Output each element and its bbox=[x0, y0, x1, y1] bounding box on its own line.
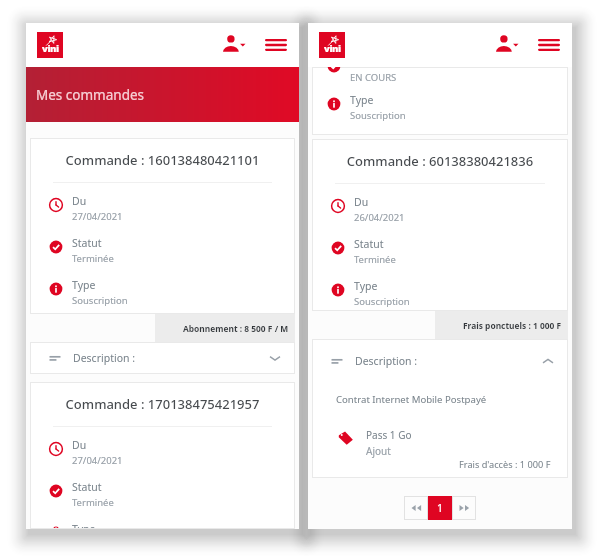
staticText: Contrat Internet Mobile Postpayé bbox=[336, 393, 487, 406]
button[interactable]: Account bbox=[496, 31, 520, 59]
staticText: Du bbox=[72, 194, 87, 208]
staticText: vini bbox=[324, 42, 341, 55]
staticText: Description : bbox=[73, 351, 136, 365]
staticText: Souscription bbox=[72, 294, 128, 307]
staticText: Souscription bbox=[350, 109, 406, 122]
button[interactable]: Previous page bbox=[404, 496, 428, 520]
staticText: Abonnement : 8 500 F / M bbox=[183, 323, 289, 334]
button[interactable]: vini home bbox=[37, 32, 63, 58]
staticText: Statut bbox=[354, 237, 384, 251]
staticText: EN COURS bbox=[350, 71, 397, 84]
button[interactable]: Description : bbox=[30, 342, 295, 374]
button[interactable]: Description : bbox=[312, 339, 568, 383]
staticText: Pass 1 Go bbox=[366, 428, 412, 442]
staticText: 1 bbox=[437, 501, 444, 515]
staticText: Terminée bbox=[354, 253, 396, 266]
staticText: Type bbox=[354, 279, 378, 293]
staticText: Description : bbox=[355, 354, 418, 368]
staticText: Commande : 60138380421836 bbox=[312, 152, 568, 170]
button[interactable]: Menu bbox=[537, 33, 561, 57]
button[interactable]: Account bbox=[223, 31, 247, 59]
staticText: Commande : 160138480421101 bbox=[30, 151, 295, 169]
staticText: Terminée bbox=[72, 252, 114, 265]
staticText: Type bbox=[350, 93, 374, 107]
staticText: Statut bbox=[72, 236, 102, 250]
button[interactable]: vini home bbox=[319, 32, 345, 58]
staticText: Commande : 170138475421957 bbox=[30, 395, 295, 413]
staticText: Statut bbox=[350, 67, 380, 69]
staticText: 27/04/2021 bbox=[72, 210, 123, 223]
button[interactable]: Menu bbox=[264, 33, 288, 57]
staticText: Souscription bbox=[354, 295, 410, 308]
button[interactable]: 1 bbox=[428, 496, 452, 520]
staticText: Mes commandes bbox=[36, 86, 145, 104]
staticText: 26/04/2021 bbox=[354, 211, 405, 224]
staticText: Type bbox=[72, 278, 96, 292]
staticText: 27/04/2021 bbox=[72, 454, 123, 467]
staticText: Du bbox=[354, 195, 369, 209]
staticText: Ajout bbox=[366, 444, 391, 458]
staticText: Du bbox=[72, 438, 87, 452]
button[interactable]: Next page bbox=[452, 496, 476, 520]
staticText: Statut bbox=[72, 480, 102, 494]
staticText: Frais ponctuels : 1 000 F bbox=[463, 320, 562, 331]
staticText: Frais d'accès : 1 000 F bbox=[459, 458, 551, 471]
staticText: Terminée bbox=[72, 496, 114, 509]
staticText: vini bbox=[42, 42, 59, 55]
staticText: Type bbox=[72, 522, 96, 529]
